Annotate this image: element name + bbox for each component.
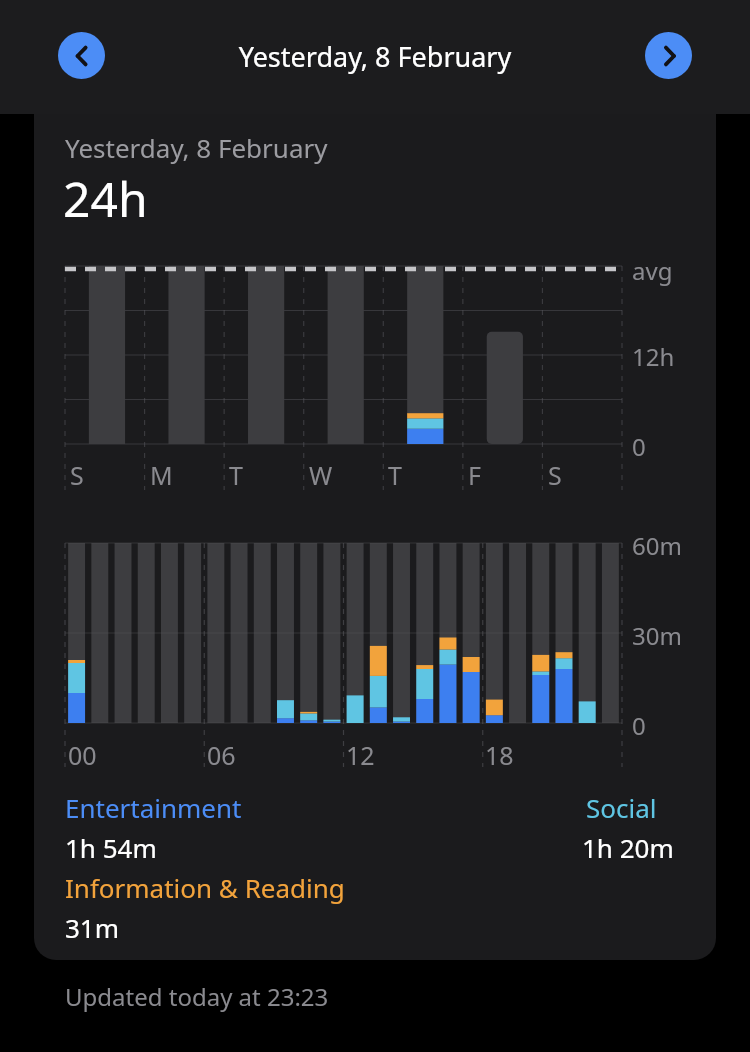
staticText: M [150, 458, 173, 492]
staticText: 0 [632, 709, 646, 742]
staticText: W [309, 458, 333, 492]
staticText: S [548, 458, 562, 492]
button[interactable]: Previous day [58, 32, 105, 79]
staticText: 60m [632, 529, 682, 562]
staticText: S [70, 458, 84, 492]
staticText: 31m [65, 910, 120, 945]
staticText: 30m [632, 619, 682, 652]
staticText: 06 [207, 738, 236, 772]
staticText: 24h [63, 166, 148, 231]
staticText: Entertainment [65, 790, 242, 825]
staticText: avg [632, 254, 673, 287]
staticText: F [468, 458, 481, 492]
staticText: 1h 20m [582, 830, 674, 865]
staticText: 12 [346, 738, 375, 772]
staticText: Yesterday, 8 February [0, 38, 750, 75]
staticText: T [229, 458, 243, 492]
staticText: 12h [632, 340, 675, 373]
button[interactable]: Next day [645, 32, 692, 79]
staticText: 18 [485, 738, 514, 772]
staticText: Updated today at 23:23 [65, 980, 329, 1013]
staticText: 00 [68, 738, 97, 772]
staticText: Information & Reading [65, 870, 345, 905]
staticText: Social [586, 790, 657, 825]
staticText: 0 [632, 430, 646, 463]
staticText: T [388, 458, 402, 492]
staticText: Yesterday, 8 February [65, 130, 328, 165]
button[interactable]: Yesterday, 8 February [34, 114, 716, 960]
staticText: 1h 54m [65, 830, 157, 865]
